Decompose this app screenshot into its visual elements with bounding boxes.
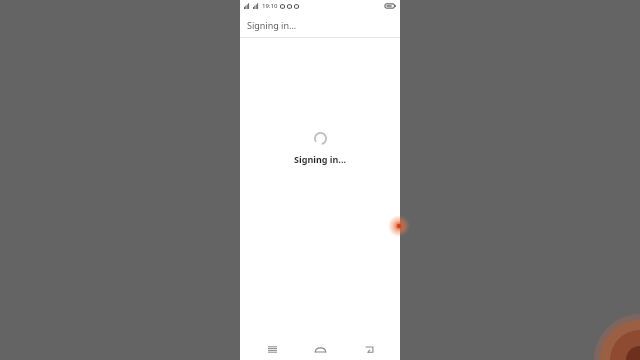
button[interactable]: Back [352,338,386,360]
staticText: Signing in... [247,19,297,31]
staticText: 19:10 [262,2,278,10]
button[interactable]: Home [303,338,337,360]
staticText: Signing in... [294,153,346,165]
button[interactable]: Recents [255,338,289,360]
button[interactable]: Signing in... [240,12,400,37]
